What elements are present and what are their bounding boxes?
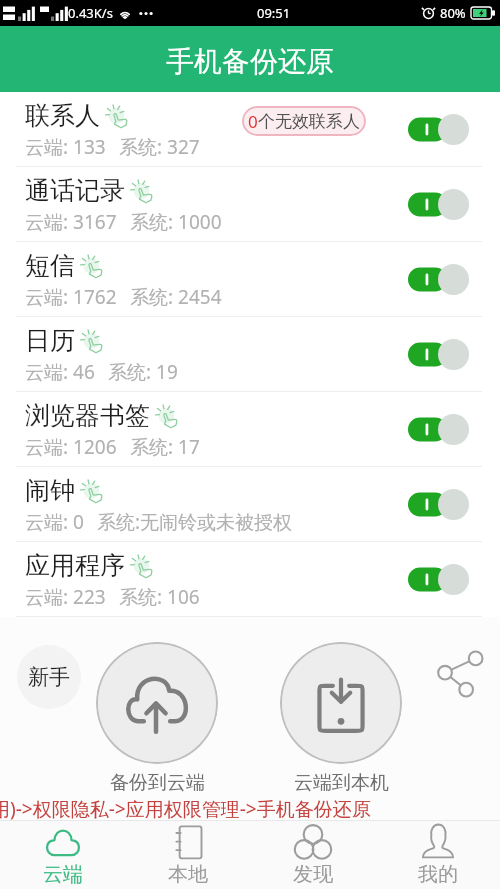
staticText: 云端: 3167 — [25, 209, 117, 235]
staticText: 云端: 133 — [25, 134, 106, 160]
button[interactable]: 发现 — [250, 821, 375, 889]
button[interactable] — [280, 642, 402, 764]
button[interactable]: 闹钟 — [0, 467, 500, 542]
button[interactable]: 云端 — [0, 821, 125, 889]
staticText: 备份到云端 — [110, 771, 205, 795]
staticText: 云端: 46 — [25, 359, 95, 385]
staticText: 新手 — [28, 664, 70, 690]
staticText: 闹钟 — [25, 475, 75, 506]
button[interactable]: Toggle — [408, 189, 469, 220]
staticText: 系统: 327 — [119, 134, 200, 160]
button[interactable]: Toggle — [408, 114, 469, 145]
staticText: 云端: 0 — [25, 509, 84, 535]
button[interactable]: 0 — [248, 106, 360, 136]
staticText: 短信 — [25, 250, 75, 281]
staticText: 用)->权限隐私->应用权限管理->手机备份还原 — [0, 796, 371, 820]
staticText: 手机备份还原 — [166, 44, 334, 79]
staticText: 云端: 223 — [25, 584, 106, 610]
button[interactable]: 通话记录 — [0, 167, 500, 242]
staticText: 0.43K/s — [68, 4, 113, 22]
button[interactable]: 短信 — [0, 242, 500, 317]
staticText: 个无效联系人 — [258, 111, 360, 132]
staticText: 系统: 2454 — [130, 284, 222, 310]
staticText: 我的 — [418, 862, 458, 887]
button[interactable]: 新手 — [17, 645, 81, 709]
button[interactable]: 日历 — [0, 317, 500, 392]
staticText: 云端: 1762 — [25, 284, 117, 310]
button[interactable]: Toggle — [408, 414, 469, 445]
button[interactable]: 浏览器书签 — [0, 392, 500, 467]
button[interactable]: Toggle — [408, 264, 469, 295]
button[interactable]: Toggle — [408, 564, 469, 595]
button[interactable] — [96, 642, 218, 764]
staticText: 浏览器书签 — [25, 400, 150, 431]
staticText: 日历 — [25, 325, 75, 356]
button[interactable]: 我的 — [375, 821, 500, 889]
button[interactable]: Toggle — [408, 339, 469, 370]
staticText: 0 — [248, 110, 258, 133]
staticText: 系统: 19 — [108, 359, 178, 385]
staticText: 系统:无闹铃或未被授权 — [97, 509, 293, 535]
staticText: 80% — [440, 4, 466, 22]
staticText: 通话记录 — [25, 175, 125, 206]
staticText: 本地 — [168, 862, 208, 887]
staticText: 云端: 1206 — [25, 434, 117, 460]
staticText: 系统: 1000 — [130, 209, 222, 235]
staticText: 应用程序 — [25, 550, 125, 581]
staticText: 系统: 17 — [130, 434, 200, 460]
button[interactable]: Toggle — [408, 489, 469, 520]
staticText: 云端 — [43, 862, 83, 887]
button[interactable]: 本地 — [125, 821, 250, 889]
staticText: 09:51 — [257, 4, 291, 22]
staticText: 系统: 106 — [119, 584, 200, 610]
staticText: 发现 — [293, 862, 333, 887]
button[interactable]: 应用程序 — [0, 542, 500, 617]
staticText: 云端到本机 — [294, 771, 389, 795]
button[interactable]: Share — [437, 651, 483, 697]
button[interactable]: 联系人 — [0, 92, 500, 167]
staticText: 联系人 — [25, 100, 100, 131]
